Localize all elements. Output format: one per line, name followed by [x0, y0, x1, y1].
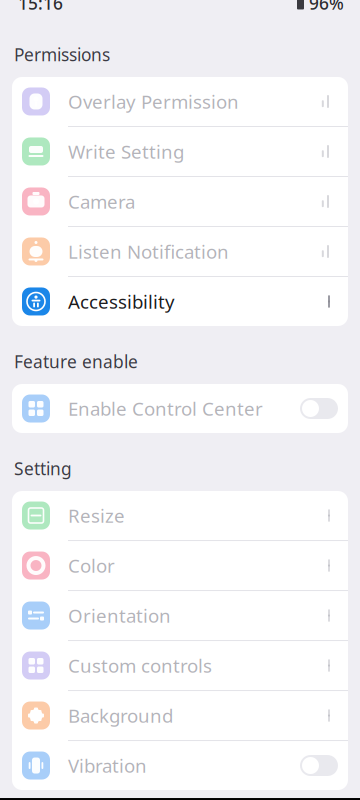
staticText: Custom controls — [68, 653, 212, 678]
button[interactable]: Resize — [12, 491, 348, 541]
staticText: Write Setting — [68, 139, 184, 164]
staticText: Orientation — [68, 603, 171, 628]
button[interactable]: Vibration — [12, 741, 348, 790]
staticText: Color — [68, 553, 115, 578]
button[interactable]: Orientation — [12, 591, 348, 641]
staticText: 96% — [309, 0, 344, 14]
button[interactable]: Write Setting — [12, 127, 348, 177]
staticText: Permissions — [14, 43, 110, 66]
staticText: 15:16 — [18, 0, 63, 14]
staticText: Listen Notification — [68, 239, 229, 264]
staticText: Feature enable — [14, 350, 138, 373]
staticText: Vibration — [68, 753, 147, 778]
staticText: Overlay Permission — [68, 89, 239, 114]
button[interactable]: Color — [12, 541, 348, 591]
staticText: Camera — [68, 189, 135, 214]
button[interactable]: Listen Notification — [12, 227, 348, 277]
button[interactable]: Accessibility — [12, 277, 348, 326]
button[interactable]: Background — [12, 691, 348, 741]
button[interactable]: Overlay Permission — [12, 77, 348, 127]
button[interactable]: Custom controls — [12, 641, 348, 691]
staticText: Resize — [68, 503, 125, 528]
button[interactable]: Enable Control Center — [12, 384, 348, 433]
staticText: Enable Control Center — [68, 396, 263, 421]
staticText: Setting — [14, 457, 72, 480]
button[interactable]: Camera — [12, 177, 348, 227]
staticText: Accessibility — [68, 289, 175, 314]
staticText: Background — [68, 703, 173, 728]
